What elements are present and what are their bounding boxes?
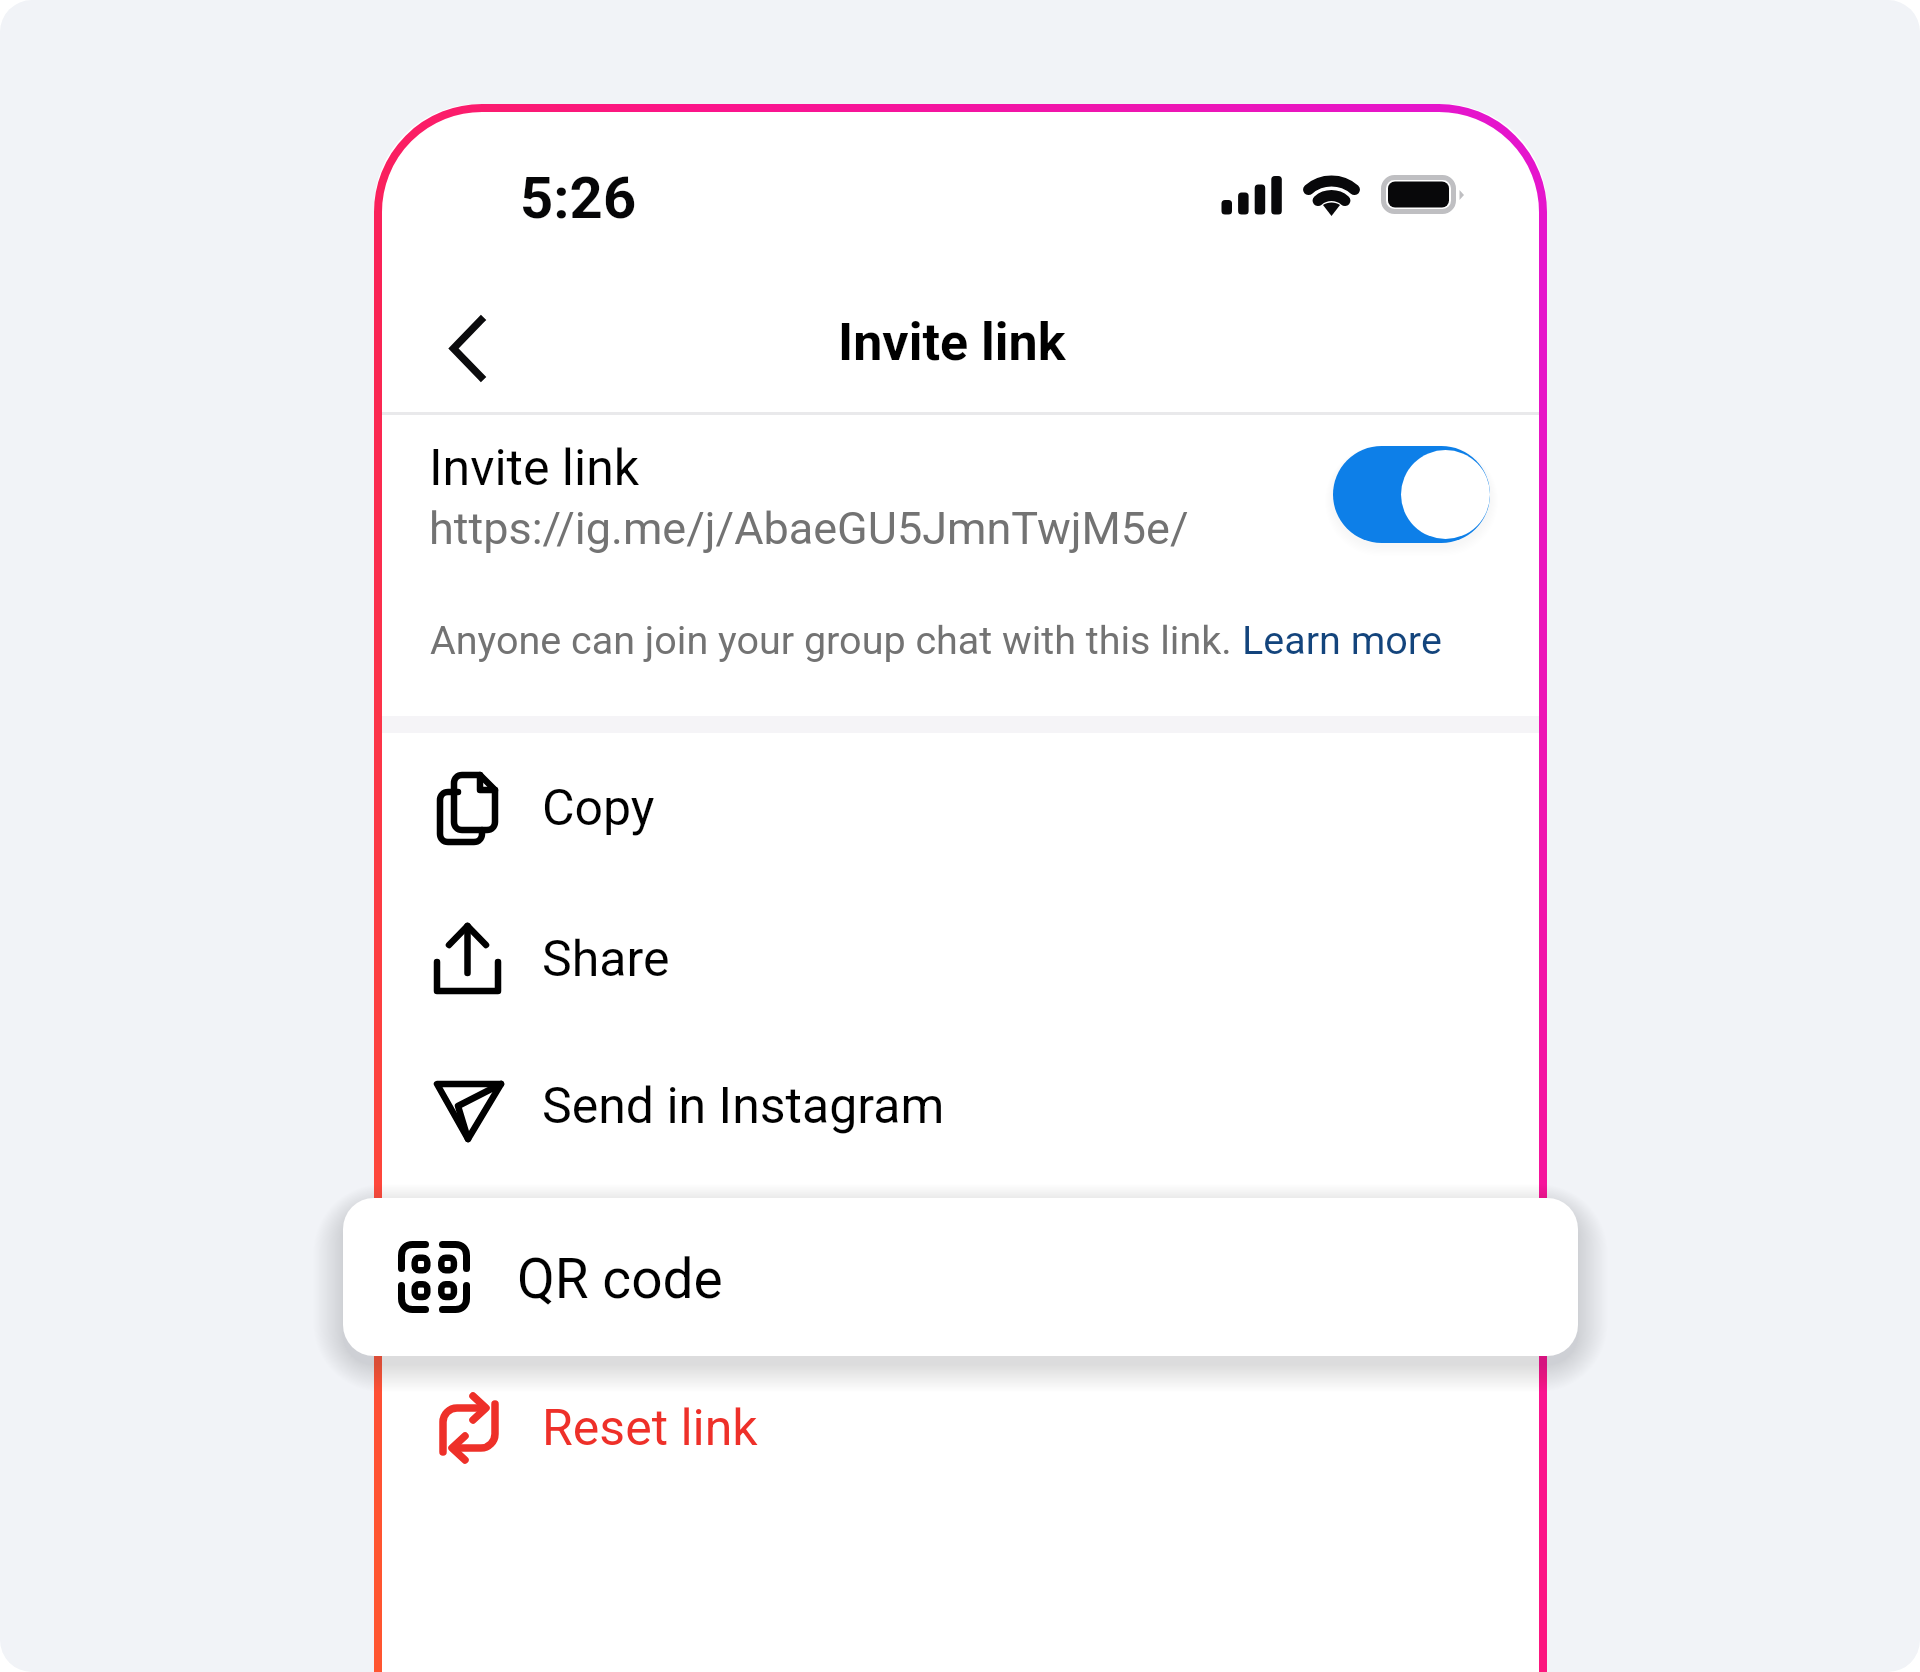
button[interactable]: Share [374, 884, 1547, 1034]
staticText: Invite link [429, 439, 640, 498]
button[interactable]: QR code [343, 1198, 1578, 1356]
button[interactable]: Reset link [374, 1353, 1547, 1503]
staticText: QR code [517, 1247, 723, 1311]
button[interactable]: Invite link enabled [1329, 442, 1494, 547]
button[interactable]: Send in Instagram [374, 1031, 1547, 1181]
staticText: 5:26 [520, 164, 637, 232]
staticText: Send in Instagram [542, 1077, 945, 1136]
staticText: Anyone can join your group chat with thi… [430, 617, 1242, 663]
button[interactable]: Copy [374, 733, 1547, 883]
staticText: Reset link [542, 1399, 758, 1458]
staticText: Invite link [838, 312, 1066, 373]
staticText: Share [542, 930, 670, 989]
button[interactable]: Learn more [1242, 617, 1442, 663]
button[interactable]: Back [424, 289, 536, 401]
staticText: Copy [542, 779, 655, 838]
staticText: https://ig.me/j/AbaeGU5JmnTwjM5e/ [429, 502, 1189, 555]
